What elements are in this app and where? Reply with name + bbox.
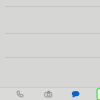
button[interactable]: More	[97, 88, 100, 100]
button[interactable]: Camera	[35, 88, 61, 100]
button[interactable]: Messages	[63, 88, 89, 100]
button[interactable]: Calls	[7, 88, 33, 100]
